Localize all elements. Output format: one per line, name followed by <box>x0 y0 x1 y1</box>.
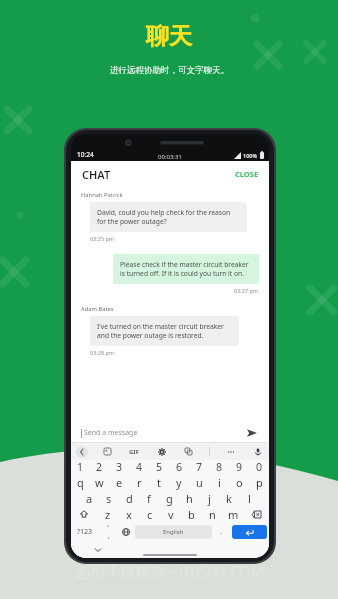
staticText: d <box>126 491 133 506</box>
button[interactable]: Send a message <box>71 423 269 443</box>
button[interactable]: I've turned on the master circuit breake… <box>90 316 239 346</box>
button[interactable]: c <box>139 506 160 522</box>
staticText: w <box>95 475 104 490</box>
button[interactable]: More options <box>224 445 237 458</box>
staticText: 聊天 <box>146 22 192 51</box>
button[interactable]: a <box>80 490 99 506</box>
button[interactable]: f <box>139 490 159 506</box>
staticText: 1 <box>77 460 84 474</box>
button[interactable]: GIF <box>127 446 141 458</box>
staticText: m <box>228 507 239 522</box>
staticText: Hannah Patrick <box>81 191 123 199</box>
button[interactable]: e <box>109 474 129 490</box>
button[interactable]: 0 <box>249 460 269 474</box>
staticText: 0 <box>256 460 263 474</box>
staticText: f <box>147 491 151 506</box>
button[interactable]: u <box>189 474 209 490</box>
button[interactable]: 2 <box>90 460 109 474</box>
button[interactable]: Stickers <box>101 445 114 458</box>
staticText: 3 <box>116 460 123 474</box>
button[interactable]: Change language <box>117 522 135 542</box>
button[interactable]: Please check if the master circuit break… <box>113 254 259 284</box>
staticText: 00:03:31 <box>158 153 182 161</box>
button[interactable]: Hide keyboard <box>93 545 103 555</box>
staticText: Send a message <box>84 428 245 438</box>
button[interactable]: b <box>181 506 202 522</box>
staticText: i <box>218 475 221 490</box>
button[interactable]: y <box>169 474 189 490</box>
button[interactable]: q <box>71 474 90 490</box>
button[interactable]: CLOSE <box>225 163 269 185</box>
staticText: a <box>86 491 93 506</box>
button[interactable]: n <box>202 506 223 522</box>
staticText: c <box>147 507 153 522</box>
button[interactable]: 4 <box>129 460 149 474</box>
button[interactable]: 3 <box>109 460 129 474</box>
button[interactable]: ?123 <box>71 522 99 542</box>
staticText: ?123 <box>77 527 93 537</box>
staticText: 2 <box>96 460 103 474</box>
button[interactable]: Shift <box>71 506 97 522</box>
button[interactable]: s <box>99 490 119 506</box>
button[interactable]: 5 <box>149 460 169 474</box>
staticText: 03:25 pm <box>90 235 115 242</box>
button[interactable]: t <box>149 474 169 490</box>
button[interactable]: g <box>159 490 179 506</box>
staticText: 进行远程协助时，可文字聊天。 <box>110 65 229 76</box>
button[interactable]: o <box>229 474 249 490</box>
button[interactable]: i <box>209 474 229 490</box>
staticText: 8 <box>216 460 223 474</box>
staticText: k <box>226 491 232 506</box>
button[interactable]: x <box>118 506 139 522</box>
staticText: 4 <box>136 460 143 474</box>
staticText: j <box>208 491 211 506</box>
staticText: CHAT <box>82 167 111 182</box>
button[interactable]: 8 <box>209 460 229 474</box>
button[interactable]: p <box>249 474 269 490</box>
button[interactable]: r <box>129 474 149 490</box>
button[interactable]: Voice input <box>251 445 264 458</box>
staticText: y <box>176 475 182 490</box>
button[interactable]: David, could you help check for the reas… <box>90 202 247 232</box>
button[interactable]: d <box>119 490 139 506</box>
button[interactable]: 6 <box>169 460 189 474</box>
button[interactable]: v <box>160 506 181 522</box>
button[interactable]: . <box>212 522 230 542</box>
button[interactable]: English <box>135 525 212 539</box>
staticText: English <box>163 528 184 536</box>
button[interactable]: j <box>199 490 219 506</box>
button[interactable]: w <box>90 474 109 490</box>
button[interactable]: 7 <box>189 460 209 474</box>
button[interactable]: Enter <box>232 525 267 539</box>
button[interactable]: z <box>97 506 118 522</box>
staticText: 5 <box>156 460 163 474</box>
button[interactable]: h <box>179 490 199 506</box>
button[interactable]: ° <box>99 522 117 542</box>
staticText: z <box>105 507 111 522</box>
staticText: 6 <box>176 460 183 474</box>
button[interactable]: Backspace <box>244 506 269 522</box>
button[interactable]: 9 <box>229 460 249 474</box>
staticText: David, could you help check for the reas… <box>97 208 240 226</box>
staticText: I've turned on the master circuit breake… <box>97 322 232 340</box>
staticText: CLOSE <box>235 169 259 179</box>
staticText: r <box>137 475 142 490</box>
button[interactable]: m <box>223 506 244 522</box>
staticText: q <box>77 475 84 490</box>
button[interactable]: 1 <box>71 460 90 474</box>
staticText: , <box>108 531 110 541</box>
button[interactable]: Back <box>76 446 88 458</box>
button[interactable]: Send <box>245 426 259 440</box>
staticText: n <box>209 507 216 522</box>
staticText: e <box>116 475 123 490</box>
staticText: t <box>157 475 161 490</box>
staticText: g <box>166 491 173 506</box>
staticText: h <box>186 491 193 506</box>
staticText: Adam Bates <box>81 305 114 313</box>
button[interactable]: Translate <box>182 445 195 458</box>
staticText: l <box>248 491 251 506</box>
button[interactable]: k <box>219 490 239 506</box>
staticText: s <box>106 491 112 506</box>
button[interactable]: Settings <box>155 445 168 458</box>
button[interactable]: l <box>239 490 259 506</box>
